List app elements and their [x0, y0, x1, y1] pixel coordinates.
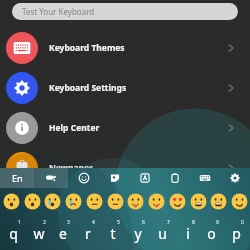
other: Newpaper [220, 157, 242, 179]
button[interactable]: 0 [225, 214, 248, 248]
staticText: i [186, 224, 190, 243]
button[interactable]: En [0, 168, 34, 188]
staticText: 8 [192, 219, 195, 226]
button[interactable]: Emoji [229, 191, 249, 211]
button[interactable]: Settings [220, 168, 250, 188]
button[interactable]: Translate [130, 168, 160, 188]
button[interactable]: 8 [176, 214, 199, 248]
other: Keyboard Settings [220, 77, 242, 99]
button[interactable]: Emoji [105, 191, 125, 211]
button[interactable]: Emoji [42, 191, 62, 211]
button[interactable]: 4 [76, 214, 99, 248]
staticText: 0 [241, 219, 244, 226]
button[interactable]: Emoji [208, 191, 228, 211]
staticText: q [9, 224, 18, 243]
staticText: Help Center [49, 122, 100, 134]
button[interactable]: Stickers [34, 168, 68, 188]
button[interactable]: Emoji [146, 191, 166, 211]
other: Help Center [220, 117, 242, 139]
button[interactable]: Test Your Keyboard [12, 3, 238, 20]
button[interactable]: 1 [2, 214, 25, 248]
button[interactable]: 3 [51, 214, 74, 248]
button[interactable]: 6 [126, 214, 149, 248]
button[interactable]: 9 [200, 214, 223, 248]
staticText: Test Your Keyboard [22, 6, 95, 17]
button[interactable]: Emoji [188, 191, 208, 211]
other: Keyboard Themes [220, 37, 242, 59]
button[interactable]: Emoji [125, 191, 145, 211]
staticText: 5 [117, 219, 120, 226]
button[interactable]: Keyboard Themes [0, 28, 250, 68]
button[interactable]: 7 [151, 214, 174, 248]
button[interactable]: Emoji [68, 168, 99, 188]
staticText: Keyboard Themes [49, 42, 125, 54]
staticText: u [158, 224, 167, 243]
staticText: Newpaper [49, 162, 93, 174]
button[interactable]: Emoji [1, 191, 21, 211]
button[interactable]: Clipboard [160, 168, 190, 188]
button[interactable]: Newpaper [0, 148, 250, 188]
button[interactable]: Keyboard Settings [0, 68, 250, 108]
button[interactable]: Help Center [0, 108, 250, 148]
staticText: y [134, 224, 142, 243]
button[interactable]: 5 [101, 214, 124, 248]
button[interactable]: 2 [27, 214, 50, 248]
staticText: 2 [43, 219, 46, 226]
staticText: 6 [142, 219, 145, 226]
button[interactable]: Emoji [84, 191, 104, 211]
button[interactable]: Emoji [22, 191, 42, 211]
button[interactable]: GIF [99, 168, 130, 188]
staticText: 4 [92, 219, 95, 226]
staticText: 3 [67, 219, 70, 226]
staticText: w [33, 224, 45, 243]
staticText: 1 [18, 219, 21, 226]
staticText: r [85, 224, 91, 243]
staticText: t [110, 224, 116, 243]
staticText: En [12, 172, 23, 184]
button[interactable]: Keyboard layout [190, 168, 220, 188]
staticText: e [59, 224, 67, 243]
staticText: Keyboard Settings [49, 82, 127, 94]
button[interactable]: Emoji [63, 191, 83, 211]
staticText: p [232, 224, 241, 243]
staticText: o [207, 224, 216, 243]
button[interactable]: Emoji [167, 191, 187, 211]
staticText: 7 [167, 219, 170, 226]
staticText: 9 [216, 219, 219, 226]
